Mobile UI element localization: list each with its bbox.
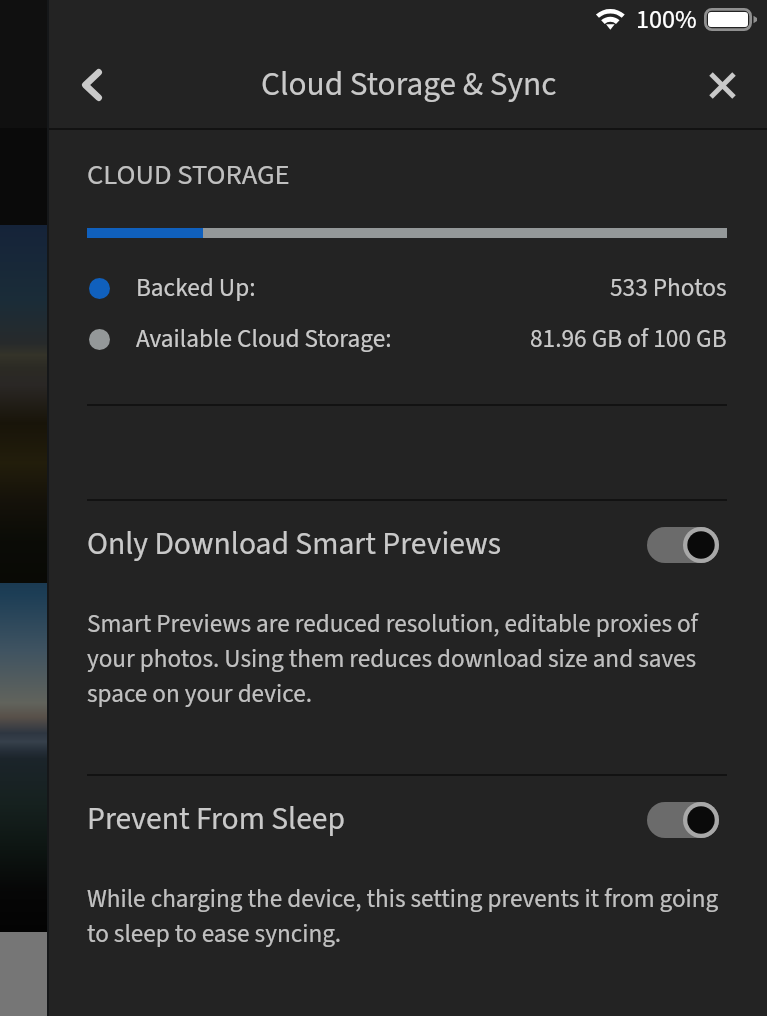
staticText: CLOUD STORAGE <box>87 155 290 196</box>
button[interactable]: Back <box>52 55 112 115</box>
staticText: 533 Photos <box>610 270 727 306</box>
button[interactable]: Prevent From Sleep <box>47 797 767 843</box>
button[interactable]: Close <box>692 55 752 115</box>
staticText: Prevent From Sleep <box>87 797 346 842</box>
staticText: 100% <box>636 1 697 38</box>
staticText: Only Download Smart Previews <box>87 522 501 567</box>
staticText: Smart Previews are reduced resolution, e… <box>87 606 727 712</box>
staticText: Available Cloud Storage: <box>136 321 392 357</box>
button[interactable]: Toggle Prevent From Sleep <box>647 802 719 838</box>
staticText: Backed Up: <box>136 270 256 306</box>
button[interactable]: Toggle Only Download Smart Previews <box>647 527 719 563</box>
button[interactable]: Only Download Smart Previews <box>47 522 767 568</box>
staticText: Cloud Storage & Sync <box>261 61 557 108</box>
staticText: While charging the device, this setting … <box>87 881 727 952</box>
staticText: 81.96 GB of 100 GB <box>530 321 727 357</box>
